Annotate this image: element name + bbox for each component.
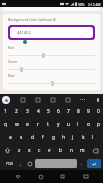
button[interactable]: h [58,131,68,144]
staticText: f [42,134,44,141]
staticText: 7 [67,108,70,115]
staticText: . [81,161,83,167]
button[interactable]: Voice input [94,96,101,103]
button[interactable]: 4414E2 [10,27,93,38]
staticText: 2 [15,108,18,115]
button[interactable]: d [27,131,38,144]
staticText: b [59,147,62,154]
button[interactable]: Recents [57,171,68,182]
button[interactable]: 9 [83,105,93,118]
staticText: 1 [4,108,7,115]
button[interactable]: f [38,131,48,144]
button[interactable]: c [34,144,44,157]
button[interactable]: b [55,144,66,157]
button[interactable]: Translate [49,96,56,103]
staticText: q [4,121,7,128]
staticText: Red [8,46,14,50]
button[interactable]: y [53,118,63,131]
button[interactable]: n [66,144,77,157]
button[interactable]: w [11,118,22,131]
staticText: m [80,147,85,154]
staticText: z [18,147,21,154]
staticText: 4414E2 [17,30,31,35]
button[interactable]: 7 [63,105,73,118]
button[interactable]: Back [12,171,23,182]
button[interactable]: a [5,131,16,144]
staticText: v [48,147,51,154]
staticText: k [82,134,85,141]
button[interactable]: More [79,96,86,103]
button[interactable]: u [63,118,73,131]
button[interactable]: 0 [93,105,103,118]
staticText: s [20,134,23,141]
staticText: 5 [47,108,50,115]
staticText: o [87,121,90,128]
button[interactable]: k [78,131,88,144]
staticText: x [28,147,31,154]
button[interactable]: r [33,118,43,131]
staticText: 9 [87,108,90,115]
staticText: ?123 [6,162,13,166]
button[interactable]: 3 [22,105,33,118]
button[interactable]: Google search [2,96,10,104]
button[interactable]: q [0,118,11,131]
button[interactable]: v [44,144,55,157]
staticText: d [31,134,34,141]
button[interactable]: Shift [0,144,14,157]
button[interactable]: z [14,144,24,157]
staticText: h [62,134,65,141]
button[interactable]: 2 [11,105,22,118]
button[interactable]: Settings [64,96,71,103]
button[interactable]: Home [35,171,46,182]
button[interactable]: x [24,144,34,157]
button[interactable]: o [83,118,93,131]
button[interactable]: Red [8,46,95,60]
staticText: 3 [26,108,29,115]
button[interactable]: , [17,159,25,168]
button[interactable]: ?123 [1,159,17,168]
button[interactable]: Space [35,159,77,168]
staticText: l [92,134,94,141]
button[interactable]: p [93,118,103,131]
button[interactable]: Blue [8,74,95,88]
button[interactable]: . [78,159,86,168]
button[interactable]: e [22,118,33,131]
button[interactable]: i [73,118,83,131]
button[interactable]: 8 [73,105,83,118]
staticText: i [77,121,79,128]
staticText: n [70,147,73,154]
staticText: Blue [8,74,15,78]
button[interactable]: 5 [43,105,53,118]
staticText: w [15,121,19,128]
button[interactable]: m [77,144,88,157]
staticText: g [52,134,55,141]
staticText: 4 [37,108,40,115]
button[interactable]: g [48,131,58,144]
staticText: t [47,121,49,128]
staticText: r [37,121,39,128]
staticText: j [72,134,74,141]
button[interactable]: Backspace [88,144,103,157]
staticText: c [38,147,41,154]
button[interactable]: Green [8,60,95,74]
staticText: e [26,121,29,128]
button[interactable]: Emoji [25,159,34,168]
button[interactable]: Background Color (without #) [3,14,100,90]
button[interactable]: Clipboard [19,96,26,103]
button[interactable]: Switch keyboard [80,171,91,182]
button[interactable]: 4 [33,105,43,118]
staticText: a [9,134,12,141]
button[interactable]: j [68,131,78,144]
button[interactable]: l [88,131,98,144]
button[interactable]: GIF [34,96,41,103]
button[interactable]: s [16,131,27,144]
staticText: 0 [97,108,100,115]
staticText: p [97,121,100,128]
button[interactable]: 6 [53,105,63,118]
staticText: y [57,121,60,128]
staticText: , [20,161,22,167]
button[interactable]: Enter [87,159,101,168]
button[interactable]: 1 [0,105,11,118]
staticText: Green [8,60,18,64]
button[interactable]: t [43,118,53,131]
